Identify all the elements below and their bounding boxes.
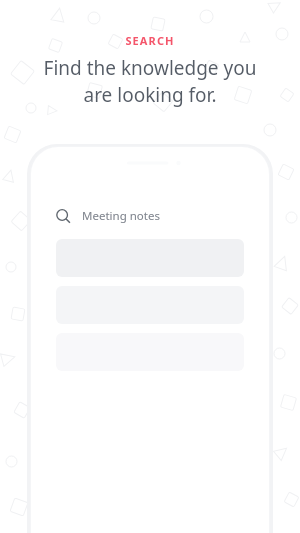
staticText: Meeting notes bbox=[82, 208, 160, 224]
staticText: Find the knowledge you are looking for. bbox=[18, 55, 282, 108]
button[interactable]: Search bbox=[31, 199, 269, 233]
staticText: SEARCH bbox=[125, 33, 175, 48]
other: Search bbox=[56, 209, 71, 224]
